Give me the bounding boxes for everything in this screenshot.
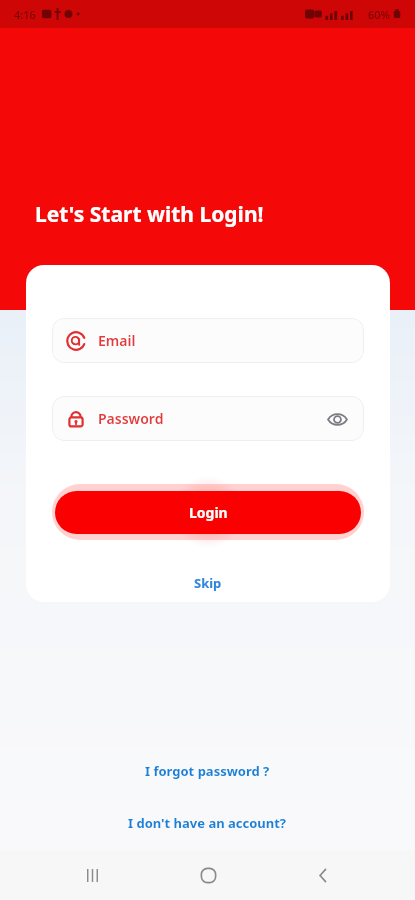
button[interactable]: Password — [52, 396, 364, 441]
button[interactable]: Recents — [68, 851, 116, 899]
staticText: I don't have an account? — [128, 814, 287, 832]
button[interactable]: Login — [55, 491, 361, 534]
staticText: Password — [98, 409, 164, 428]
button[interactable]: I forgot password ? — [131, 758, 284, 784]
staticText: 60% — [368, 7, 390, 22]
staticText: 4:16 — [14, 7, 36, 22]
staticText: Skip — [194, 574, 222, 592]
button[interactable]: Skip — [176, 570, 240, 596]
staticText: Login — [189, 503, 228, 522]
staticText: Email — [98, 331, 136, 350]
button[interactable]: Email — [52, 318, 364, 363]
button[interactable]: Show password — [324, 406, 350, 432]
staticText: Let's Start with Login! — [35, 200, 264, 229]
button[interactable]: Back — [299, 851, 347, 899]
button[interactable]: Home — [184, 851, 232, 899]
button[interactable]: I don't have an account? — [114, 810, 301, 836]
staticText: I forgot password ? — [145, 762, 270, 780]
